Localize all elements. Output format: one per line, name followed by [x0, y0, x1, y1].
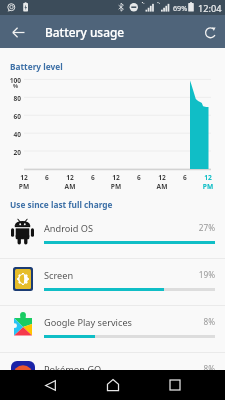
staticText: AM — [60, 182, 80, 191]
staticText: 12 — [14, 173, 34, 182]
button[interactable]: Refresh — [198, 20, 222, 44]
button[interactable]: Screen — [0, 259, 225, 305]
staticText: 12 — [152, 173, 172, 182]
button[interactable]: Android OS — [0, 212, 225, 258]
staticText: 80 — [0, 94, 21, 103]
staticText: Battery usage — [45, 24, 125, 40]
staticText: Battery level — [10, 61, 63, 72]
button[interactable]: Recent apps — [162, 370, 187, 400]
staticText: 6 — [37, 173, 57, 182]
staticText: Google Play services — [44, 316, 132, 329]
staticText: 12 — [198, 173, 218, 182]
staticText: 6 — [175, 173, 195, 182]
button[interactable]: Home — [100, 370, 125, 400]
staticText: 100 — [0, 76, 21, 85]
staticText: Use since last full charge — [10, 199, 113, 210]
staticText: 8% — [170, 316, 215, 327]
staticText: Screen — [44, 269, 74, 282]
staticText: 19% — [170, 269, 215, 280]
staticText: 20 — [0, 148, 21, 157]
button[interactable]: Navigate up — [6, 20, 30, 44]
staticText: 69% — [173, 3, 188, 13]
staticText: 8% — [170, 363, 215, 374]
staticText: 12 — [106, 173, 126, 182]
button[interactable]: Back — [38, 370, 63, 400]
staticText: PM — [198, 182, 218, 191]
staticText: 12 — [60, 173, 80, 182]
staticText: 40 — [0, 130, 21, 139]
button[interactable]: Pokémon GO — [0, 353, 225, 399]
staticText: % — [13, 82, 19, 90]
staticText: 12:04 — [198, 2, 222, 15]
staticText: PM — [106, 182, 126, 191]
staticText: 60 — [0, 112, 21, 121]
staticText: Pokémon GO — [44, 363, 102, 376]
button[interactable]: Google Play services — [0, 306, 225, 352]
staticText: Android OS — [44, 222, 93, 235]
staticText: 6 — [83, 173, 103, 182]
staticText: AM — [152, 182, 172, 191]
staticText: 6 — [129, 173, 149, 182]
staticText: PM — [14, 182, 34, 191]
staticText: 27% — [170, 222, 215, 233]
